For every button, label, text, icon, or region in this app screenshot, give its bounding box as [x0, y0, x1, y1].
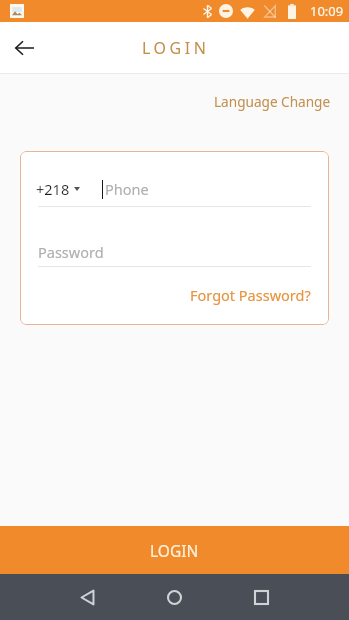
button[interactable]: Back [65, 575, 110, 620]
button[interactable]: Home [152, 575, 197, 620]
button[interactable]: Back [6, 30, 42, 66]
staticText: 10:09 [310, 2, 344, 20]
button[interactable]: +218 [36, 179, 100, 199]
staticText: Language Change [214, 92, 331, 111]
button[interactable]: Language Change [204, 88, 349, 115]
staticText: Forgot Password? [190, 285, 311, 305]
button[interactable]: LOGIN [0, 526, 349, 574]
button[interactable]: Forgot Password? [190, 285, 311, 305]
staticText: LOGIN [142, 37, 210, 59]
button[interactable]: Password [38, 232, 311, 262]
button[interactable]: Recents [239, 575, 284, 620]
staticText: +218 [36, 179, 70, 199]
button[interactable]: Phone [102, 178, 311, 200]
staticText: Phone [105, 179, 149, 199]
staticText: Password [38, 242, 104, 262]
staticText: LOGIN [150, 540, 199, 561]
